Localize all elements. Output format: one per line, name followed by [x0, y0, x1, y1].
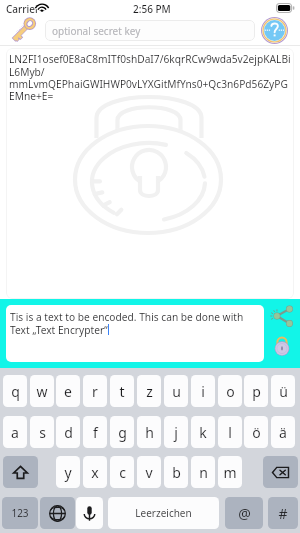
button[interactable]: i: [191, 375, 215, 407]
button[interactable]: 123: [2, 497, 38, 529]
button[interactable]: k: [191, 416, 215, 448]
button[interactable]: g: [110, 416, 134, 448]
staticText: w: [36, 382, 48, 401]
staticText: z: [146, 382, 153, 401]
button[interactable]: ö: [244, 416, 268, 448]
button[interactable]: x: [83, 456, 107, 488]
staticText: o: [226, 382, 235, 401]
staticText: s: [39, 423, 46, 442]
button[interactable]: u: [164, 375, 188, 407]
staticText: j: [174, 423, 178, 442]
staticText: g: [118, 423, 127, 442]
staticText: f: [93, 423, 98, 442]
staticText: 2:56 PM: [133, 2, 171, 16]
staticText: n: [199, 463, 208, 482]
button[interactable]: r: [83, 375, 107, 407]
button[interactable]: Backspace: [263, 456, 298, 488]
staticText: a: [11, 423, 19, 442]
button[interactable]: Help: [260, 16, 288, 44]
staticText: LN2FI1osef0E8aC8mITf0shDaI7/6kqrRCw9wda5…: [9, 52, 291, 103]
button[interactable]: y: [56, 456, 80, 488]
staticText: ö: [252, 423, 261, 442]
staticText: p: [252, 382, 261, 401]
button[interactable]: Tis is a text to be encoded. This can be…: [6, 305, 264, 362]
button[interactable]: l: [218, 416, 242, 448]
staticText: x: [91, 463, 99, 482]
button[interactable]: a: [3, 416, 27, 448]
button[interactable]: Shift: [3, 456, 38, 488]
staticText: k: [199, 423, 207, 442]
staticText: u: [172, 382, 181, 401]
staticText: r: [92, 382, 98, 401]
staticText: #: [278, 504, 288, 523]
staticText: Tis is a text to be encoded. This can be…: [10, 310, 244, 337]
staticText: q: [11, 382, 20, 401]
button[interactable]: s: [30, 416, 54, 448]
staticText: m: [223, 463, 237, 482]
staticText: ü: [279, 382, 288, 401]
staticText: 123: [11, 506, 29, 520]
staticText: e: [64, 382, 72, 401]
button[interactable]: Share: [268, 302, 296, 330]
button[interactable]: optional secret key: [45, 20, 255, 41]
button[interactable]: #: [268, 497, 298, 529]
staticText: t: [119, 382, 125, 401]
button[interactable]: e: [56, 375, 80, 407]
button[interactable]: p: [244, 375, 268, 407]
button[interactable]: @: [225, 497, 263, 529]
button[interactable]: f: [83, 416, 107, 448]
button[interactable]: ü: [271, 375, 295, 407]
button[interactable]: q: [3, 375, 27, 407]
button[interactable]: z: [137, 375, 161, 407]
staticText: @: [238, 504, 251, 523]
button[interactable]: j: [164, 416, 188, 448]
staticText: h: [145, 423, 154, 442]
staticText: d: [64, 423, 73, 442]
button[interactable]: o: [218, 375, 242, 407]
button[interactable]: m: [218, 456, 242, 488]
staticText: Leerzeichen: [135, 506, 192, 520]
staticText: y: [64, 463, 72, 482]
button[interactable]: Dictate: [76, 497, 103, 529]
button[interactable]: b: [164, 456, 188, 488]
button[interactable]: t: [110, 375, 134, 407]
button[interactable]: w: [30, 375, 54, 407]
button[interactable]: ä: [271, 416, 295, 448]
staticText: ä: [279, 423, 287, 442]
staticText: b: [172, 463, 181, 482]
staticText: Carrier: [6, 2, 40, 16]
staticText: i: [201, 382, 205, 401]
button[interactable]: Secret key: [7, 16, 39, 46]
button[interactable]: Encrypt: [269, 332, 295, 358]
button[interactable]: h: [137, 416, 161, 448]
staticText: c: [119, 463, 126, 482]
button[interactable]: LN2FI1osef0E8aC8mITf0shDaI7/6kqrRCw9wda5…: [6, 48, 294, 299]
button[interactable]: c: [110, 456, 134, 488]
staticText: v: [145, 463, 153, 482]
button[interactable]: d: [56, 416, 80, 448]
button[interactable]: Switch keyboard: [40, 497, 75, 529]
button[interactable]: n: [191, 456, 215, 488]
button[interactable]: Leerzeichen: [108, 497, 219, 529]
staticText: l: [228, 423, 232, 442]
staticText: optional secret key: [52, 24, 141, 38]
button[interactable]: v: [137, 456, 161, 488]
